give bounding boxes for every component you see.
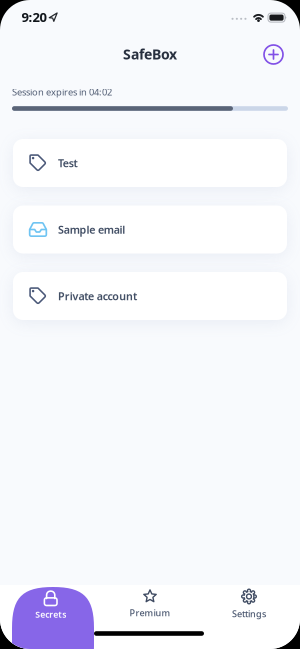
staticText: Private account (58, 289, 137, 303)
staticText: Sample email (58, 222, 125, 237)
button[interactable]: Add secret (258, 39, 288, 69)
staticText: Test (58, 156, 77, 170)
button[interactable]: Secrets (12, 587, 94, 649)
button[interactable]: Premium (100, 585, 200, 649)
staticText: SafeBox (123, 44, 177, 64)
staticText: Session expires in 04:02 (12, 86, 112, 98)
button[interactable]: Test (13, 139, 287, 187)
button[interactable]: Sample email (13, 205, 287, 253)
staticText: Premium (129, 606, 170, 619)
staticText: Secrets (35, 608, 66, 620)
button[interactable]: Settings (199, 585, 299, 649)
staticText: Settings (232, 607, 266, 620)
staticText: 9:20 (21, 8, 46, 26)
button[interactable]: Private account (13, 272, 287, 320)
